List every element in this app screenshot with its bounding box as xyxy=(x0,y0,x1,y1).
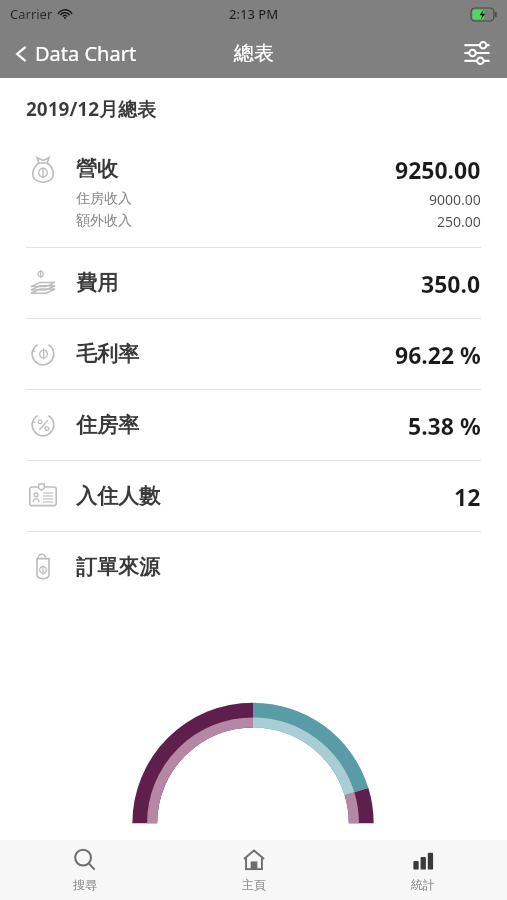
button[interactable]: 費用 xyxy=(0,248,507,318)
staticText: Carrier xyxy=(10,5,53,23)
button[interactable]: 毛利率 xyxy=(0,319,507,389)
staticText: 總表 xyxy=(234,41,274,66)
staticText: 主頁 xyxy=(242,877,266,892)
button[interactable]: 搜尋 xyxy=(0,840,169,900)
staticText: 營收 xyxy=(76,156,118,182)
staticText: 額外收入 xyxy=(76,212,132,230)
button[interactable]: 主頁 xyxy=(169,840,338,900)
button[interactable]: 統計 xyxy=(338,840,507,900)
staticText: 住房率 xyxy=(76,412,139,438)
staticText: 搜尋 xyxy=(73,877,97,892)
staticText: Data Chart xyxy=(35,40,137,67)
staticText: 9000.00 xyxy=(429,190,481,209)
staticText: 350.0 xyxy=(421,268,481,299)
staticText: 2:13 PM xyxy=(229,5,279,23)
staticText: 統計 xyxy=(411,877,435,892)
staticText: 毛利率 xyxy=(76,341,139,367)
staticText: 2019/12月總表 xyxy=(26,96,157,122)
staticText: 入住人數 xyxy=(76,483,160,509)
staticText: 250.00 xyxy=(437,212,481,231)
staticText: 住房收入 xyxy=(76,190,132,208)
button[interactable]: 營收 xyxy=(0,152,507,247)
staticText: 費用 xyxy=(76,270,118,296)
staticText: 9250.00 xyxy=(395,154,481,185)
button[interactable]: Filter settings xyxy=(447,39,507,67)
button[interactable]: 入住人數 xyxy=(0,461,507,531)
staticText: 96.22 % xyxy=(395,339,481,370)
button[interactable]: Data Chart xyxy=(0,40,149,67)
staticText: 12 xyxy=(454,481,481,512)
button[interactable]: 住房率 xyxy=(0,390,507,460)
staticText: 訂單來源 xyxy=(76,554,160,580)
staticText: 5.38 % xyxy=(408,410,481,441)
button[interactable]: 訂單來源 xyxy=(0,532,507,602)
